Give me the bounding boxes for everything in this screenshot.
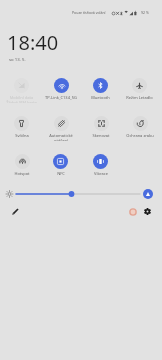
button[interactable]: NFC <box>41 152 80 179</box>
button[interactable]: Hotspot <box>2 152 41 179</box>
button[interactable]: Skenovat <box>81 114 120 141</box>
button[interactable]: TP-Link_C134_5G <box>41 76 80 103</box>
button[interactable]: Ochrana zraku <box>120 114 159 141</box>
button[interactable]: Upravit <box>9 205 22 218</box>
staticText: Automatické otáčení <box>49 133 73 141</box>
staticText: Režim Letadlo <box>126 95 153 100</box>
staticText: Bluetooth <box>91 95 110 100</box>
staticText: Pouze tísňová volání <box>72 10 106 15</box>
staticText: NFC <box>57 171 65 176</box>
staticText: Vibrace <box>94 171 108 176</box>
staticText: Skenovat <box>92 133 110 138</box>
staticText: 18:40 <box>7 29 59 56</box>
button[interactable]: Jas <box>0 187 162 201</box>
button[interactable]: Mobilní data Žádná SIM karta <box>2 76 41 103</box>
staticText: Ochrana zraku <box>126 133 154 138</box>
button[interactable]: Režim Letadlo <box>120 76 159 103</box>
button[interactable]: Bluetooth <box>81 76 120 103</box>
button[interactable]: Vibrace <box>81 152 120 179</box>
button[interactable]: Automatický jas <box>143 189 153 199</box>
button[interactable]: Uživatel <box>126 205 139 218</box>
staticText: so 13. 5. <box>9 56 26 62</box>
staticText: Mobilní data Žádná SIM karta <box>6 95 37 103</box>
staticText: 92 % <box>141 10 149 15</box>
button[interactable]: Svítilna <box>2 114 41 141</box>
staticText: TP-Link_C134_5G <box>45 95 77 100</box>
staticText: Svítilna <box>15 133 29 138</box>
staticText: Hotspot <box>14 171 30 176</box>
button[interactable]: Automatické otáčení <box>41 114 80 141</box>
button[interactable]: Nastavení <box>141 205 154 218</box>
